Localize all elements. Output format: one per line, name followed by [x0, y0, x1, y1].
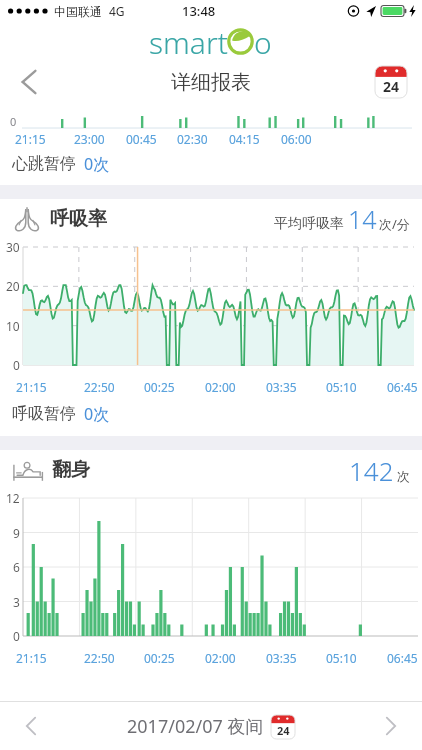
- staticText: 02:30: [177, 131, 208, 147]
- staticText: 00:25: [144, 650, 175, 666]
- staticText: 23:00: [74, 131, 105, 147]
- button[interactable]: Calendar: [374, 65, 408, 99]
- staticText: 03:35: [266, 379, 297, 395]
- button[interactable]: Back: [0, 57, 58, 107]
- staticText: 6: [13, 559, 20, 575]
- staticText: 次/分: [379, 215, 410, 233]
- staticText: 0次: [84, 403, 110, 425]
- staticText: 06:45: [387, 379, 418, 395]
- staticText: 24: [383, 77, 400, 96]
- staticText: 2017/02/07 夜间: [127, 714, 264, 739]
- staticText: 13:48: [182, 2, 216, 20]
- staticText: 14: [348, 202, 377, 236]
- staticText: 00:45: [126, 131, 157, 147]
- staticText: 03:35: [266, 650, 297, 666]
- staticText: 翻身: [52, 458, 90, 482]
- staticText: 呼吸暂停: [12, 404, 76, 424]
- button[interactable]: Next day: [360, 702, 422, 750]
- staticText: 0: [13, 357, 20, 373]
- staticText: 06:00: [281, 131, 312, 147]
- staticText: 中国联通: [54, 4, 102, 19]
- staticText: 0: [10, 114, 17, 129]
- staticText: 142: [349, 453, 394, 488]
- staticText: 0: [13, 628, 20, 644]
- staticText: 02:00: [205, 379, 236, 395]
- staticText: 22:50: [84, 650, 115, 666]
- staticText: o: [254, 22, 272, 57]
- staticText: 10: [6, 318, 20, 334]
- staticText: 次: [397, 468, 410, 484]
- staticText: 24: [277, 723, 290, 738]
- staticText: 9: [13, 525, 20, 541]
- staticText: smart: [149, 22, 228, 57]
- staticText: 3: [13, 594, 20, 610]
- staticText: 30: [6, 239, 20, 255]
- button[interactable]: Previous day: [0, 702, 62, 750]
- staticText: 06:45: [387, 650, 418, 666]
- staticText: 21:15: [15, 131, 46, 147]
- staticText: 心跳暂停: [12, 154, 76, 174]
- staticText: 4G: [109, 3, 125, 19]
- staticText: 04:15: [229, 131, 260, 147]
- staticText: 21:15: [16, 379, 47, 395]
- staticText: 呼吸率: [50, 207, 107, 231]
- staticText: 22:50: [84, 379, 115, 395]
- staticText: 0次: [84, 153, 110, 175]
- staticText: 20: [6, 278, 20, 294]
- staticText: 平均呼吸率: [274, 215, 344, 233]
- staticText: 05:10: [326, 379, 357, 395]
- staticText: 05:10: [326, 650, 357, 666]
- button[interactable]: 2017/02/07 夜间: [127, 714, 295, 739]
- staticText: 02:00: [205, 650, 236, 666]
- staticText: 详细报表: [171, 70, 251, 95]
- staticText: 12: [6, 490, 20, 506]
- staticText: 21:15: [16, 650, 47, 666]
- staticText: 00:25: [144, 379, 175, 395]
